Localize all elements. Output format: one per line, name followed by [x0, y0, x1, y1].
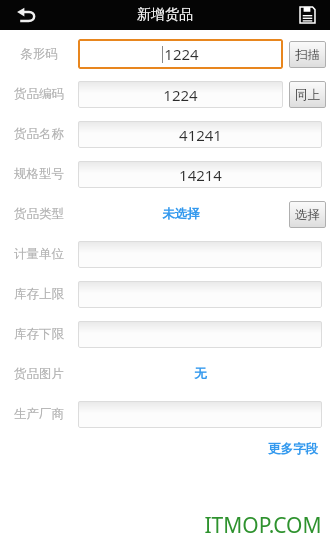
staticText: 1224: [164, 44, 199, 64]
button[interactable]: [78, 401, 322, 428]
staticText: 更多字段: [268, 441, 318, 457]
button[interactable]: 1224: [78, 39, 283, 69]
button[interactable]: 扫描: [289, 41, 326, 68]
staticText: 规格型号: [14, 166, 64, 182]
button[interactable]: 更多字段: [264, 437, 322, 461]
button[interactable]: Save: [284, 0, 330, 30]
staticText: 选择: [295, 207, 320, 223]
button[interactable]: 同上: [289, 81, 326, 108]
button[interactable]: 1224: [78, 81, 283, 108]
button[interactable]: 41241: [78, 121, 322, 148]
staticText: 新增货品: [137, 6, 193, 24]
staticText: 货品图片: [14, 366, 64, 382]
staticText: 计量单位: [14, 246, 64, 262]
staticText: 货品编码: [14, 86, 64, 102]
button[interactable]: 14214: [78, 161, 322, 188]
staticText: 14214: [179, 165, 222, 185]
staticText: 无: [194, 366, 207, 382]
staticText: 未选择: [162, 206, 200, 222]
staticText: 41241: [179, 125, 222, 145]
button[interactable]: [78, 281, 322, 308]
staticText: 条形码: [20, 46, 58, 62]
button[interactable]: [78, 321, 322, 348]
button[interactable]: [78, 241, 322, 268]
staticText: 货品名称: [14, 126, 64, 142]
staticText: 货品类型: [14, 206, 64, 222]
staticText: ITMOP.COM: [204, 511, 322, 540]
button[interactable]: 选择: [289, 201, 326, 228]
button[interactable]: 无: [78, 354, 322, 394]
staticText: 扫描: [295, 47, 320, 63]
staticText: 同上: [295, 87, 320, 103]
staticText: 1224: [163, 85, 198, 105]
staticText: 库存下限: [14, 326, 64, 342]
button[interactable]: Back: [0, 0, 52, 30]
staticText: 生产厂商: [14, 406, 64, 422]
staticText: 库存上限: [14, 286, 64, 302]
button[interactable]: 未选择: [78, 194, 283, 234]
